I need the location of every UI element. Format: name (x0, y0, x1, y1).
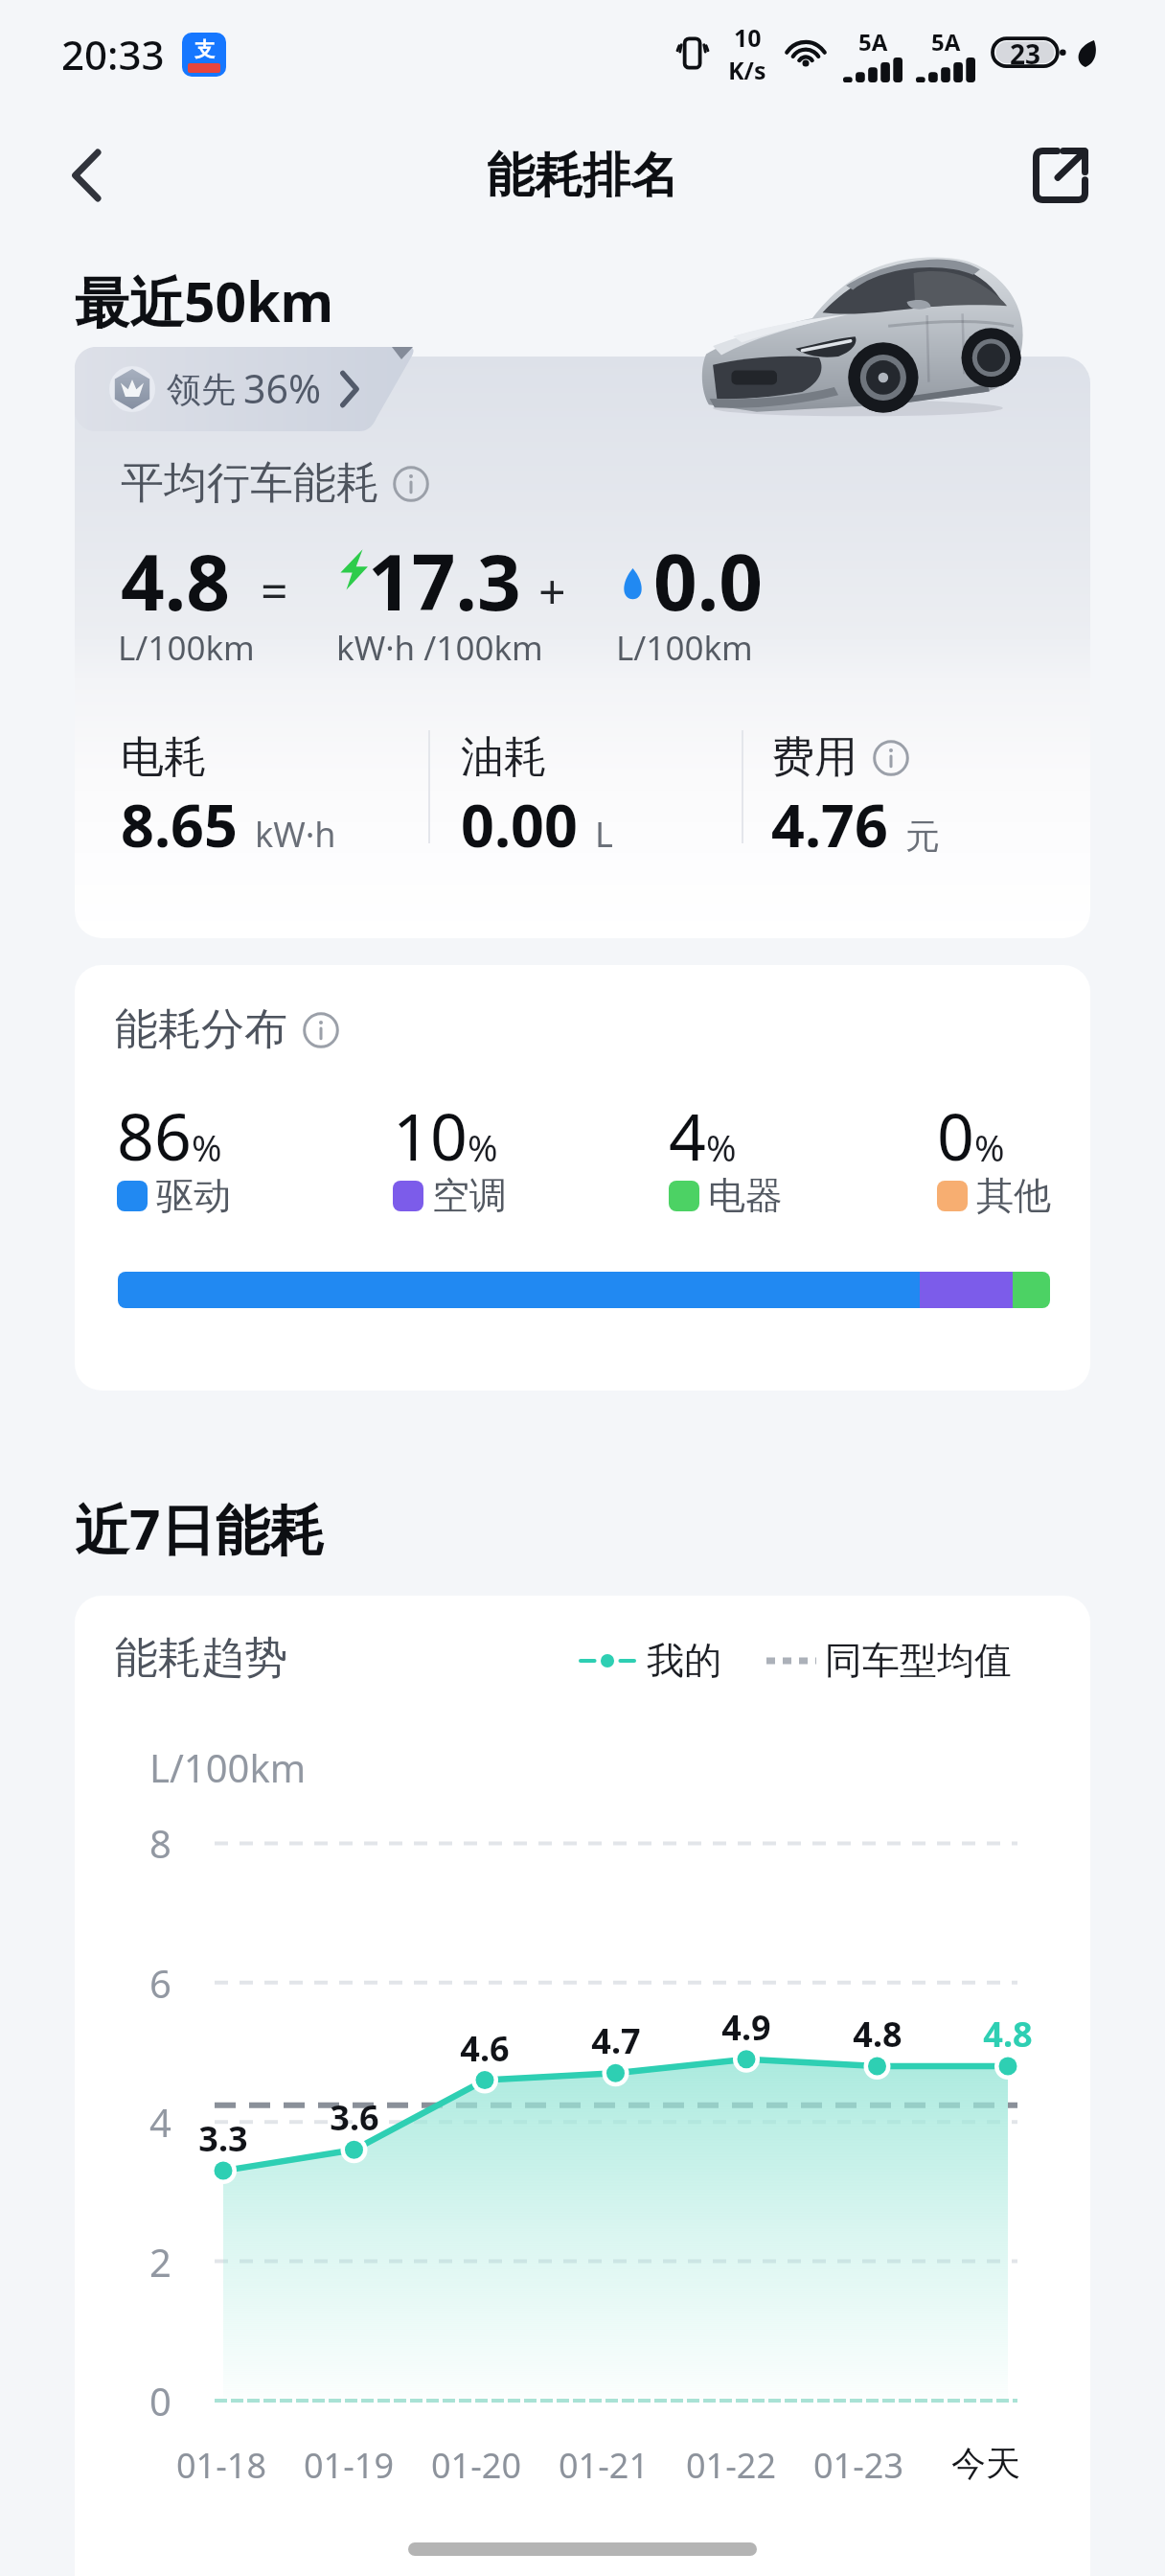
staticText: 0.00 (461, 785, 578, 864)
staticText: kW·h (255, 811, 336, 858)
staticText: 能耗分布 (115, 1002, 287, 1057)
staticText: 3.3 (198, 2115, 248, 2162)
staticText: L/100km (118, 625, 255, 671)
staticText: % (706, 1122, 737, 1172)
staticText: 17.3 (368, 528, 521, 632)
staticText: 4.8 (983, 2011, 1033, 2058)
staticText: 01-23 (813, 2442, 903, 2489)
staticText: 4.6 (460, 2025, 510, 2072)
staticText: L/100km (616, 625, 753, 671)
staticText: 平均行车能耗 (121, 456, 379, 511)
staticText: % (468, 1122, 498, 1172)
staticText: 4.8 (121, 528, 230, 632)
staticText: 01-22 (686, 2442, 776, 2489)
staticText: K/s (728, 54, 766, 86)
button[interactable]: Share (1017, 131, 1105, 219)
staticText: 4.8 (853, 2011, 902, 2058)
staticText: 01-19 (304, 2442, 394, 2489)
staticText: kW·h /100km (336, 625, 543, 671)
staticText: 其他 (976, 1172, 1051, 1219)
staticText: 0 (937, 1091, 974, 1180)
staticText: 4 (669, 1091, 706, 1180)
staticText: 5A (858, 26, 888, 57)
staticText: 我的 (647, 1637, 721, 1684)
staticText: 10 (734, 21, 762, 54)
button[interactable]: More information (873, 740, 909, 776)
staticText: 能耗趋势 (115, 1631, 287, 1686)
staticText: + (538, 558, 566, 623)
staticText: 6 (149, 1957, 171, 2009)
staticText: 01-20 (431, 2442, 521, 2489)
staticText: 5A (931, 26, 961, 57)
staticText: L (595, 811, 613, 858)
button[interactable]: Back (42, 131, 130, 219)
staticText: 86 (117, 1091, 192, 1180)
staticText: 支 (194, 37, 215, 62)
staticText: % (192, 1122, 222, 1172)
staticText: 01-18 (176, 2442, 266, 2489)
staticText: 近7日能耗 (75, 1491, 325, 1566)
staticText: 费用 (771, 730, 857, 785)
staticText: 同车型均值 (825, 1637, 1012, 1684)
staticText: 20:33 (61, 27, 165, 81)
staticText: 8 (149, 1817, 171, 1869)
button[interactable]: 领先 (75, 347, 417, 431)
staticText: 油耗 (461, 730, 547, 785)
staticText: 驱动 (156, 1172, 231, 1219)
staticText: 4 (149, 2096, 171, 2148)
staticText: 10 (393, 1091, 468, 1180)
staticText: 2 (149, 2236, 171, 2288)
staticText: % (974, 1122, 1005, 1172)
staticText: 电器 (708, 1172, 783, 1219)
staticText: 4.76 (771, 785, 888, 864)
button[interactable]: More information (393, 466, 429, 502)
staticText: 3.6 (330, 2094, 379, 2141)
staticText: 36% (243, 361, 321, 415)
staticText: 8.65 (121, 785, 238, 864)
staticText: 23 (1010, 35, 1041, 72)
staticText: 今天 (951, 2442, 1020, 2485)
staticText: 空调 (432, 1172, 507, 1219)
staticText: 元 (905, 815, 940, 858)
staticText: 01-21 (559, 2442, 649, 2489)
staticText: 4.9 (721, 2004, 771, 2051)
staticText: 0 (149, 2375, 171, 2426)
staticText: L/100km (149, 1741, 307, 1793)
staticText: 领先 (167, 368, 236, 411)
staticText: 4.7 (591, 2017, 641, 2064)
staticText: 电耗 (121, 730, 207, 785)
staticText: = (261, 558, 288, 623)
staticText: 最近50km (75, 264, 334, 338)
button[interactable]: More information (303, 1012, 339, 1048)
staticText: 0.0 (653, 528, 763, 632)
staticText: 能耗排名 (487, 146, 678, 206)
